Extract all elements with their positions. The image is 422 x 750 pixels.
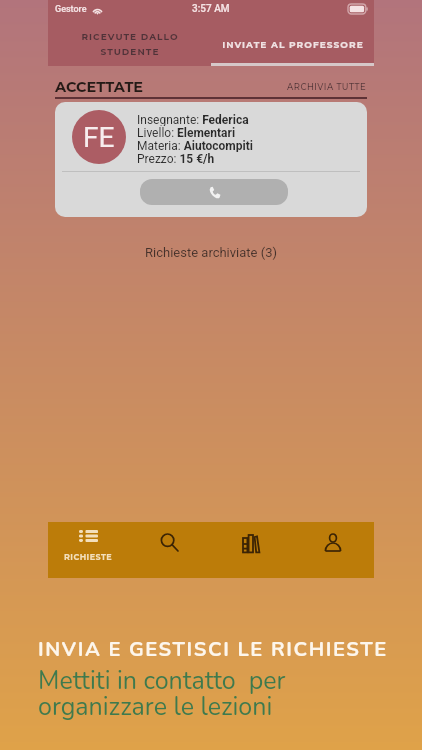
staticText: INVIA E GESTISCI LE RICHIESTE: [38, 636, 388, 663]
button[interactable]: RICHIESTE: [48, 522, 129, 578]
staticText: Gestore: [55, 4, 87, 15]
button[interactable]: Libreria: [210, 522, 292, 578]
button[interactable]: Richieste archiviate (3): [48, 245, 374, 260]
button[interactable]: FE: [55, 102, 367, 217]
button[interactable]: Chiama: [140, 179, 288, 205]
staticText: Mettiti in contatto per organizzare le l…: [38, 664, 286, 723]
staticText: ARCHIVIA TUTTE: [287, 82, 367, 92]
staticText: RICEVUTE DALLO STUDENTE: [81, 31, 179, 57]
staticText: Prezzo: 15 €/h: [137, 152, 215, 165]
staticText: Livello: Elementari: [137, 126, 236, 139]
staticText: ACCETTATE: [55, 78, 144, 96]
button[interactable]: Cerca: [129, 522, 210, 578]
staticText: Insegnante: Federica: [137, 113, 249, 126]
button[interactable]: RICEVUTE DALLO STUDENTE: [48, 22, 211, 66]
button[interactable]: Profilo: [292, 522, 374, 578]
staticText: 3:57 AM: [192, 3, 230, 15]
staticText: RICHIESTE: [64, 552, 113, 562]
staticText: INVIATE AL PROFESSORE: [222, 39, 364, 50]
staticText: FE: [83, 121, 115, 154]
button[interactable]: ARCHIVIA TUTTE: [287, 82, 367, 92]
staticText: Materia: Aiutocompiti: [137, 139, 253, 152]
button[interactable]: INVIATE AL PROFESSORE: [211, 22, 374, 66]
